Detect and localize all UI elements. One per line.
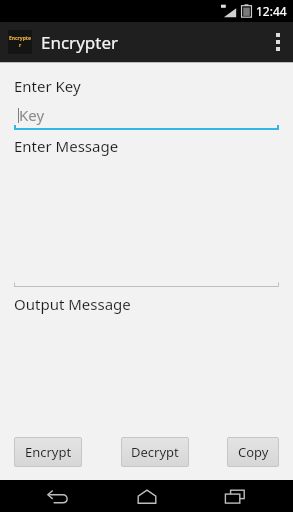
button[interactable]: Decrypt: [121, 437, 189, 467]
staticText: Copy: [238, 443, 269, 461]
button[interactable]: Key: [14, 104, 279, 130]
staticText: Encrypt: [25, 443, 72, 461]
button[interactable]: Home: [117, 480, 177, 512]
staticText: Enter Message: [14, 136, 119, 156]
staticText: Output Message: [14, 294, 131, 314]
staticText: Enter Key: [14, 76, 81, 96]
staticText: Key: [19, 105, 45, 125]
staticText: 12:44: [256, 3, 287, 19]
staticText: Decrypt: [131, 443, 179, 461]
button[interactable]: Copy: [227, 437, 279, 467]
staticText: Encrypter: [41, 31, 119, 54]
button[interactable]: More options: [263, 22, 293, 62]
button[interactable]: Recents: [205, 480, 265, 512]
staticText: Encrypter: [8, 35, 32, 49]
button[interactable]: [14, 162, 279, 287]
button[interactable]: Encrypt: [14, 437, 82, 467]
button[interactable]: Encrypter: [8, 30, 119, 54]
button[interactable]: Back: [28, 480, 88, 512]
